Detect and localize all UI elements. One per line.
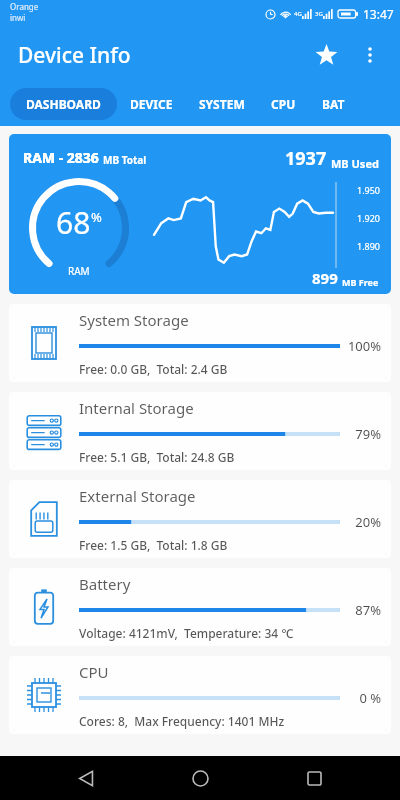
staticText: 1.950 xyxy=(357,184,381,196)
staticText: Free: 5.1 GB, Total: 24.8 GB xyxy=(79,449,235,465)
staticText: 3G xyxy=(315,10,323,18)
staticText: RAM xyxy=(68,264,90,278)
staticText: Device Info xyxy=(18,41,131,70)
staticText: RAM - 2836 xyxy=(23,148,103,167)
staticText: DEVICE xyxy=(130,96,173,112)
button[interactable]: More options xyxy=(348,33,392,77)
staticText: RAM - 2836 xyxy=(23,148,103,167)
staticText: % xyxy=(91,208,102,226)
staticText: CPU xyxy=(271,96,296,112)
staticText: 13:47 xyxy=(363,6,394,22)
staticText: System Storage xyxy=(79,310,189,330)
staticText: inwi xyxy=(10,12,26,23)
button[interactable]: External Storage xyxy=(9,480,391,558)
staticText: BAT xyxy=(322,96,345,112)
staticText: 79% xyxy=(347,425,381,443)
button[interactable]: SYSTEM xyxy=(186,88,258,120)
button[interactable]: Back xyxy=(58,756,114,800)
button[interactable]: Recents xyxy=(286,756,342,800)
button[interactable]: System Storage xyxy=(9,304,391,382)
staticText: 100% xyxy=(347,337,381,355)
staticText: Free: 1.5 GB, Total: 1.8 GB xyxy=(79,537,228,553)
button[interactable]: Internal Storage xyxy=(9,392,391,470)
staticText: Internal Storage xyxy=(79,398,194,418)
staticText: 1.890 xyxy=(357,240,381,252)
staticText: MB Total xyxy=(103,153,147,167)
staticText: External Storage xyxy=(79,486,196,506)
button[interactable]: CPU xyxy=(258,88,309,120)
button[interactable]: Favorite xyxy=(304,33,348,77)
button[interactable]: Battery xyxy=(9,568,391,646)
button[interactable]: DEVICE xyxy=(117,88,186,120)
staticText: Voltage: 4121mV, Temperature: 34 ℃ xyxy=(79,625,294,641)
button[interactable]: Home xyxy=(172,756,228,800)
staticText: DASHBOARD xyxy=(26,96,101,112)
button[interactable]: DASHBOARD xyxy=(10,88,117,120)
button[interactable]: CPU xyxy=(9,656,391,734)
staticText: 899 xyxy=(312,268,342,288)
staticText: 68 xyxy=(56,202,91,243)
staticText: Orange xyxy=(10,1,39,12)
staticText: 20% xyxy=(347,513,381,531)
staticText: MB Used xyxy=(331,156,379,171)
staticText: 0 % xyxy=(347,689,381,707)
staticText: Free: 0.0 GB, Total: 2.4 GB xyxy=(79,361,228,377)
staticText: 87% xyxy=(347,601,381,619)
staticText: 1.920 xyxy=(357,212,381,224)
button[interactable]: BAT xyxy=(309,88,358,120)
staticText: MB Free xyxy=(342,276,379,288)
staticText: Battery xyxy=(79,574,131,594)
button[interactable]: RAM - 2836 xyxy=(9,134,391,294)
staticText: 4G xyxy=(294,10,302,18)
staticText: SYSTEM xyxy=(199,96,245,112)
staticText: 1937 xyxy=(285,146,331,171)
staticText: CPU xyxy=(79,662,109,682)
staticText: Cores: 8, Max Frequency: 1401 MHz xyxy=(79,713,285,729)
